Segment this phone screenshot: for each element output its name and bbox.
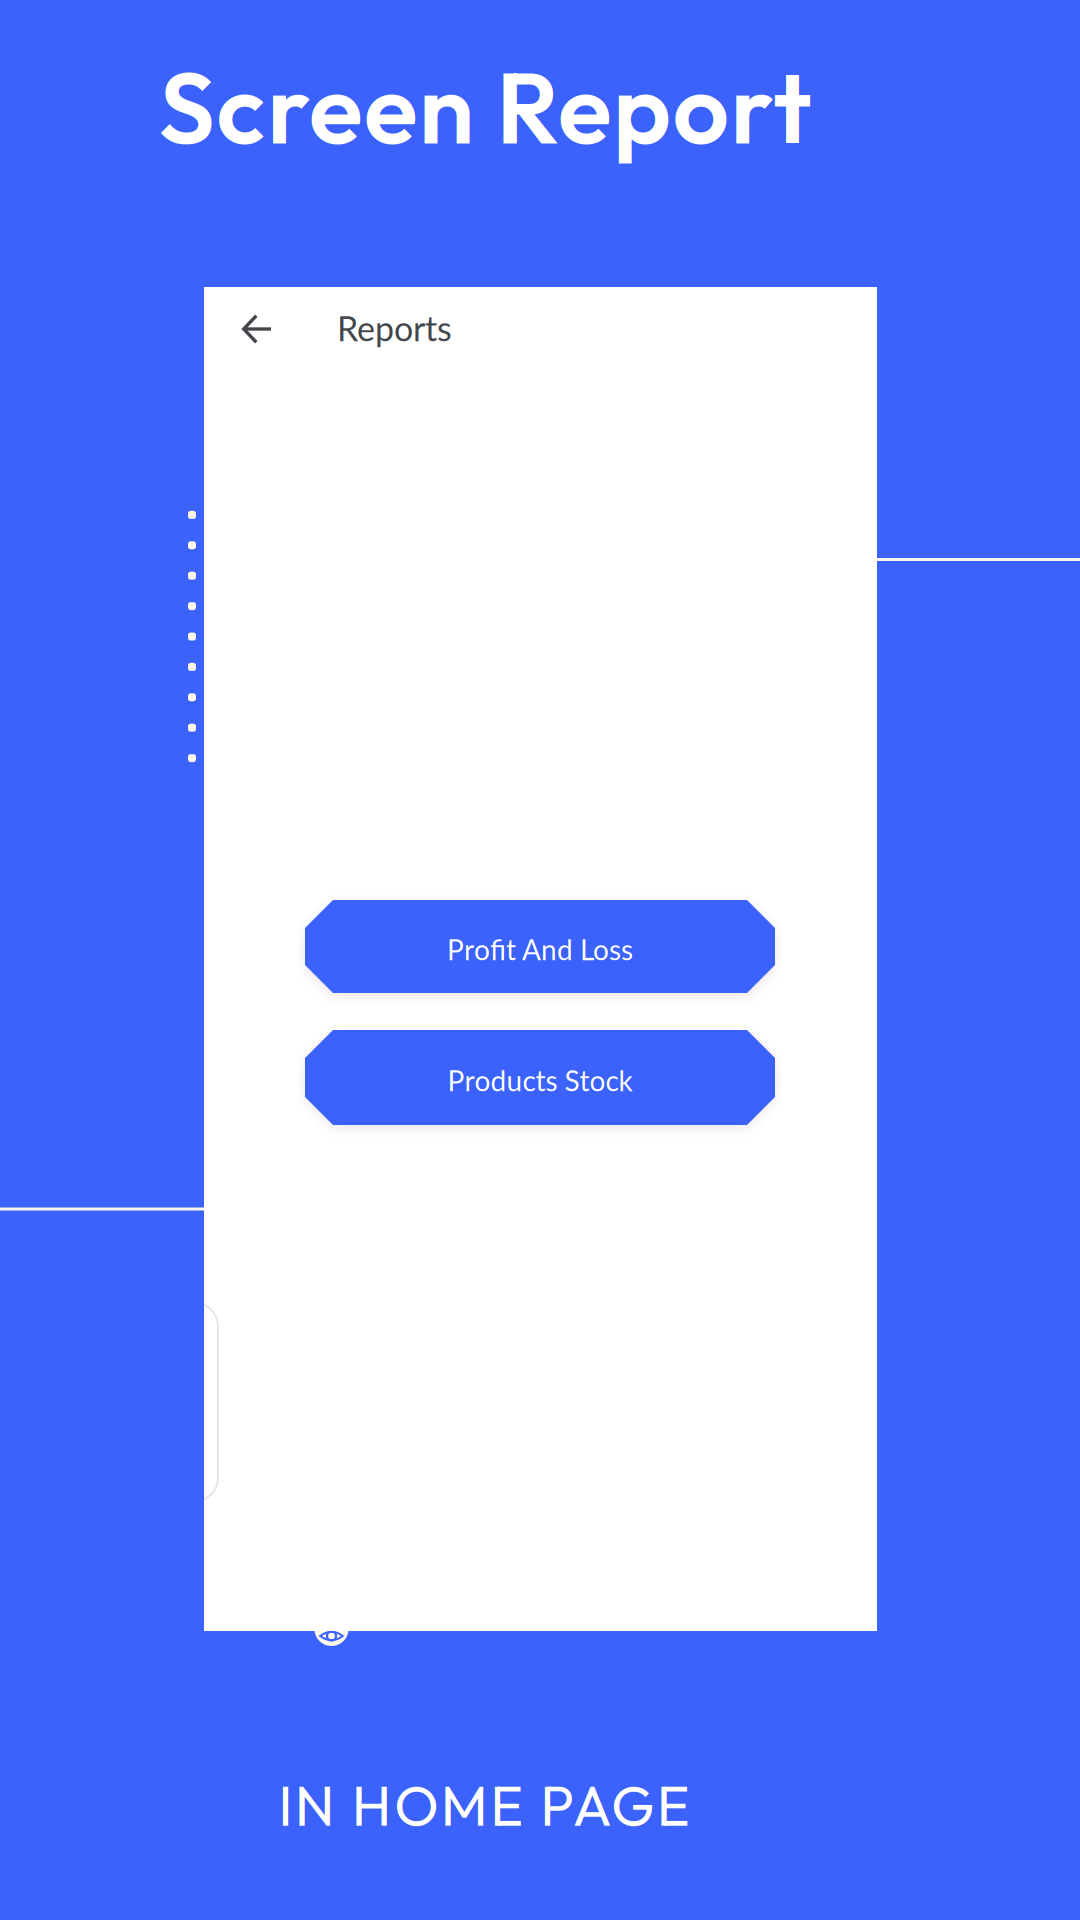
button[interactable]: Back bbox=[228, 300, 286, 358]
button[interactable]: Products Stock bbox=[305, 1030, 775, 1125]
staticText: Profit And Loss bbox=[447, 933, 633, 966]
button[interactable]: Profit And Loss bbox=[305, 900, 775, 993]
staticText: Products Stock bbox=[447, 1064, 632, 1097]
staticText: Screen Report bbox=[159, 45, 811, 169]
staticText: IN HOME PAGE bbox=[278, 1770, 690, 1840]
staticText: Reports bbox=[337, 308, 452, 348]
